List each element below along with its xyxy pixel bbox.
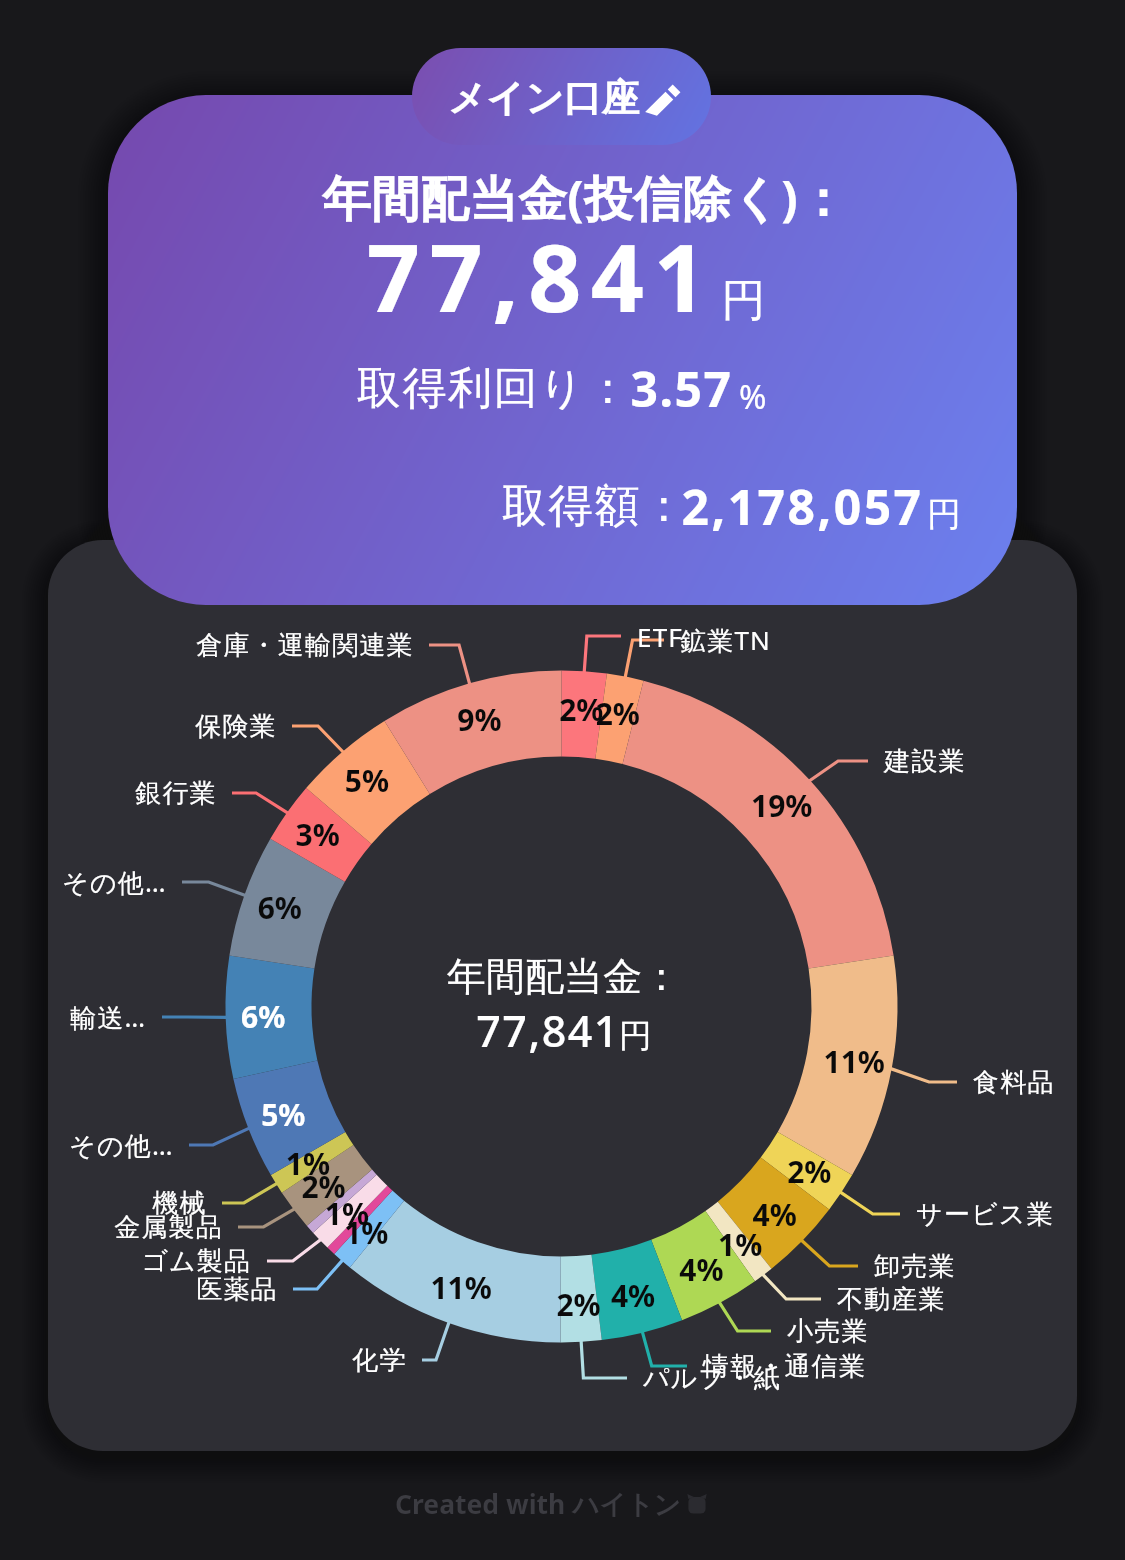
button[interactable]: メイン口座 編集: [412, 48, 711, 145]
button[interactable]: [108, 95, 1017, 605]
